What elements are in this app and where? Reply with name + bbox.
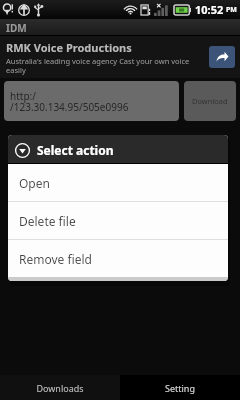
staticText: Open: [19, 175, 50, 191]
staticText: Select action: [37, 142, 114, 158]
staticText: Delete file: [19, 213, 76, 229]
button[interactable]: Downloads: [0, 375, 120, 400]
button[interactable]: Open ad: [209, 46, 235, 68]
staticText: Downloads: [36, 382, 84, 394]
staticText: PM: [226, 5, 237, 15]
staticText: Remove field: [19, 251, 92, 267]
button[interactable]: http:/ /123.30.134.95/505e0996: [4, 81, 179, 121]
staticText: RMK Voice Productions: [6, 40, 132, 55]
button[interactable]: Open: [8, 164, 228, 201]
button[interactable]: Delete file: [8, 202, 228, 239]
button[interactable]: Setting: [120, 375, 240, 400]
staticText: Download: [192, 96, 228, 106]
staticText: Setting: [165, 382, 195, 394]
button[interactable]: RMK Voice Productions: [0, 36, 240, 78]
button[interactable]: Download: [184, 81, 236, 121]
staticText: 10:52: [195, 2, 224, 17]
button[interactable]: Remove field: [8, 240, 228, 277]
staticText: http:/ /123.30.134.95/505e0996: [10, 89, 129, 114]
staticText: IDM: [6, 21, 27, 35]
staticText: Australia's leading voice agency Cast yo…: [6, 56, 196, 75]
